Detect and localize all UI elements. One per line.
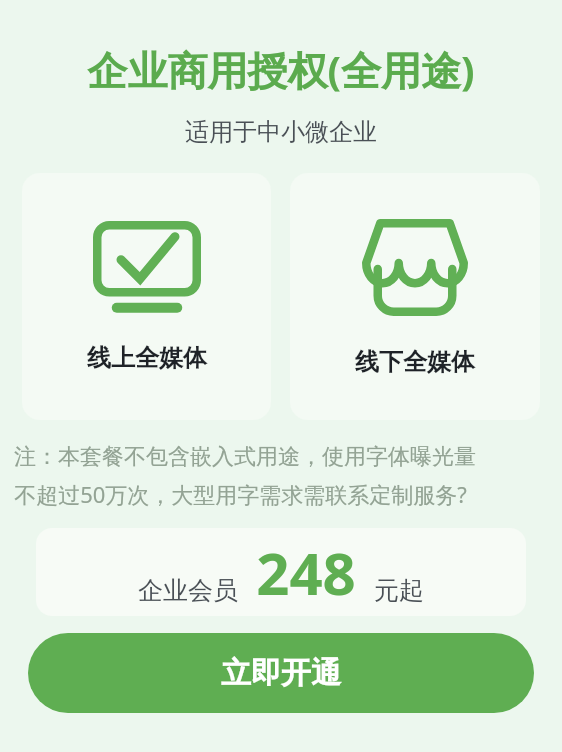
staticText: 企业会员 [138, 575, 238, 606]
staticText: 立即开通 [221, 654, 341, 692]
staticText: 248 [256, 533, 356, 612]
staticText: 线下全媒体 [355, 347, 475, 377]
button[interactable]: 立即开通 [28, 633, 534, 713]
staticText: 不超过50万次，大型用字需求需联系定制服务? [14, 479, 467, 509]
button[interactable]: 企业会员 [36, 528, 526, 616]
other: Online full media [93, 221, 201, 313]
staticText: 企业商用授权(全用途) [87, 42, 475, 97]
staticText: 适用于中小微企业 [185, 117, 377, 147]
staticText: 线上全媒体 [87, 343, 207, 373]
other: Offline full media [361, 217, 469, 317]
staticText: 注：本套餐不包含嵌入式用途，使用字体曝光量 [14, 443, 476, 471]
button[interactable]: Online full media [22, 173, 271, 420]
staticText: 元起 [374, 575, 424, 606]
button[interactable]: Offline full media [290, 173, 540, 420]
